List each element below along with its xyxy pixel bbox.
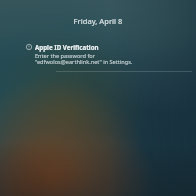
staticText: Enter the password for "edfwolos@earthli… xyxy=(35,52,155,66)
staticText: Friday, April 8 xyxy=(0,16,196,26)
staticText: Apple ID Verification xyxy=(35,43,99,51)
button[interactable]: Alert xyxy=(0,42,196,67)
other: Alert xyxy=(26,44,32,50)
